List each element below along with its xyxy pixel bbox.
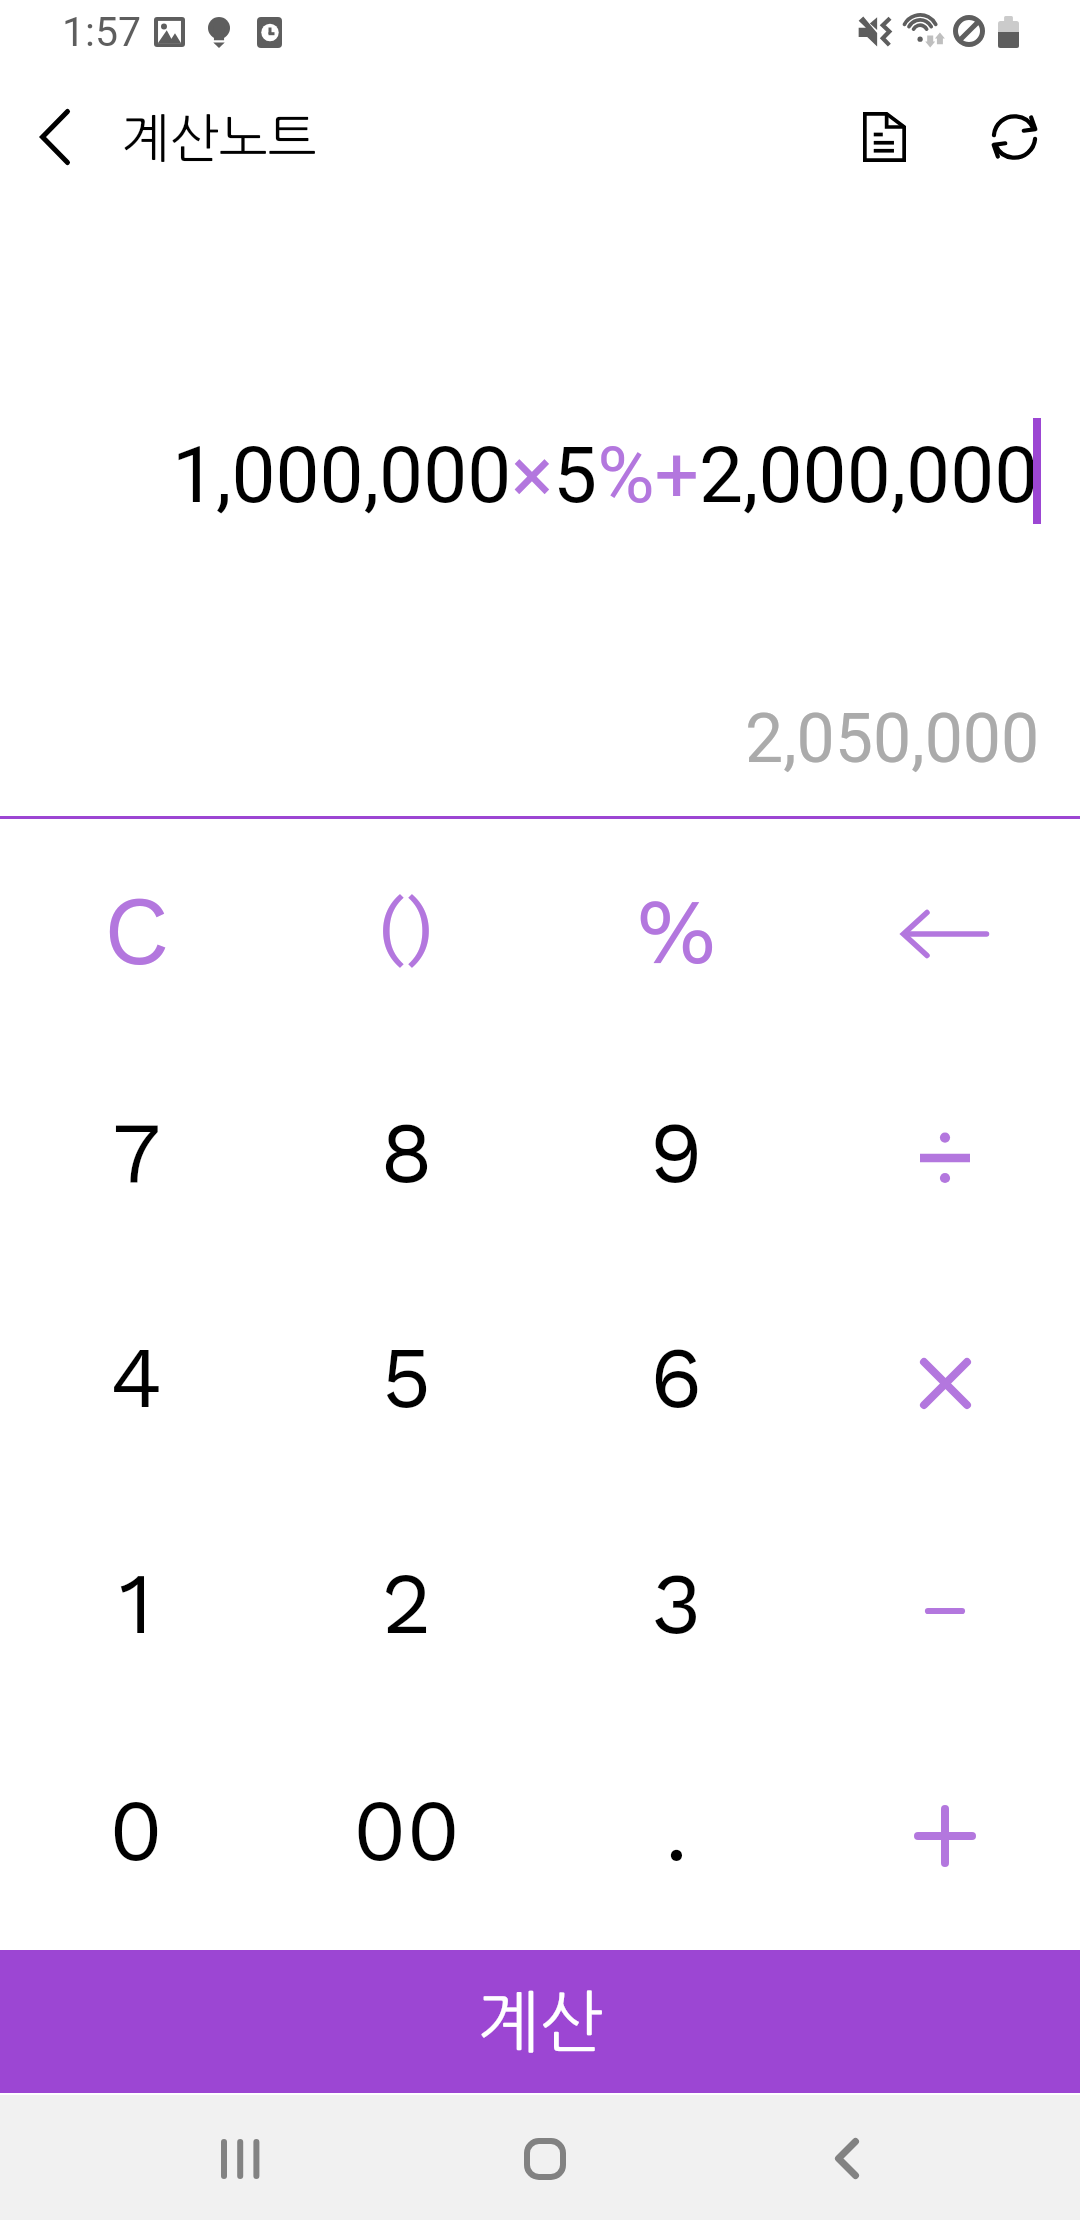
button[interactable] (270, 819, 540, 1046)
staticText: 8 (380, 1102, 433, 1203)
staticText: 1 (119, 1553, 153, 1654)
button[interactable] (0, 1272, 270, 1498)
other: Plus (914, 1805, 976, 1867)
staticText: 1:57 (62, 8, 142, 56)
button[interactable] (0, 1046, 270, 1272)
button[interactable] (270, 1046, 540, 1272)
button[interactable]: Refresh (959, 85, 1069, 195)
button[interactable] (0, 819, 270, 1046)
staticText: 2 (381, 1553, 432, 1654)
button[interactable] (810, 1272, 1080, 1498)
button[interactable] (810, 819, 1080, 1046)
button[interactable]: Home (482, 2095, 607, 2220)
button[interactable]: Note (829, 85, 939, 195)
staticText: 7 (112, 1102, 161, 1203)
staticText: 1,000,000×5%+2,000,000 (172, 429, 1039, 521)
staticText: C (103, 874, 170, 988)
staticText: () (378, 880, 434, 973)
button[interactable]: 계산 (0, 1950, 1080, 2093)
button[interactable] (540, 1046, 810, 1272)
button[interactable]: Back (784, 2095, 909, 2220)
button[interactable] (810, 1724, 1080, 1950)
button[interactable]: Back (0, 85, 110, 195)
button[interactable] (540, 1724, 810, 1950)
staticText: 00 (353, 1780, 460, 1881)
button[interactable] (0, 1498, 270, 1724)
other: Multiply (920, 1358, 971, 1409)
button[interactable] (270, 1498, 540, 1724)
staticText: 6 (650, 1327, 703, 1428)
button[interactable] (270, 1272, 540, 1498)
button[interactable]: Recents (180, 2095, 305, 2220)
staticText: 3 (651, 1553, 702, 1654)
button[interactable] (270, 1724, 540, 1950)
staticText: % (637, 877, 716, 985)
other: Minus (925, 1607, 965, 1615)
staticText: 5 (381, 1327, 432, 1428)
staticText: . (665, 1780, 688, 1881)
staticText: 0 (109, 1780, 163, 1881)
button[interactable] (540, 1272, 810, 1498)
button[interactable] (540, 1498, 810, 1724)
other: Divide (919, 1132, 971, 1184)
button[interactable] (810, 1498, 1080, 1724)
button[interactable] (810, 1046, 1080, 1272)
staticText: 계산 (477, 1989, 603, 2056)
button[interactable] (540, 819, 810, 1046)
staticText: 4 (110, 1327, 163, 1428)
button[interactable] (0, 1724, 270, 1950)
staticText: 2,050,000 (745, 699, 1040, 779)
staticText: 9 (649, 1102, 703, 1203)
staticText: 계산노트 (121, 112, 317, 164)
other: Backspace (901, 910, 989, 958)
